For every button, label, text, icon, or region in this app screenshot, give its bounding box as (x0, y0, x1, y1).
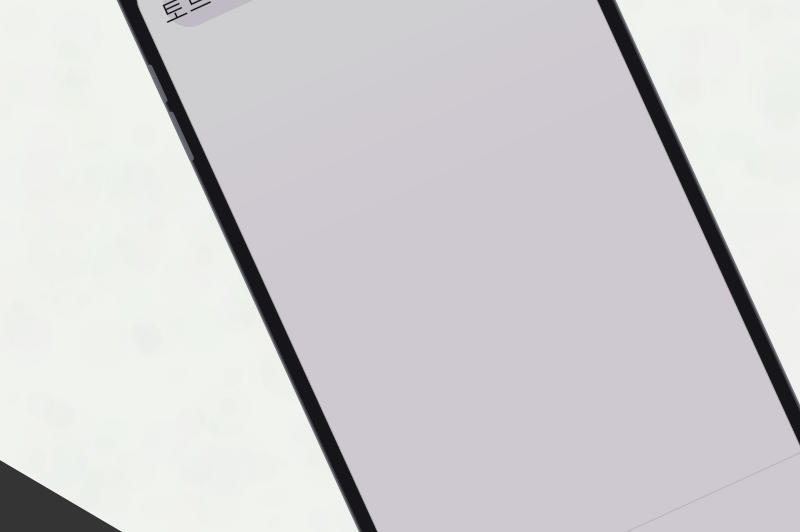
button[interactable]: Phone showing voice search result (0, 0, 800, 532)
